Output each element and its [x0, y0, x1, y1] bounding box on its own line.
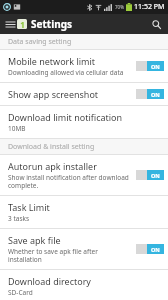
staticText: ON [151, 91, 160, 98]
staticText: 10MB [8, 124, 26, 133]
staticText: Whether to save apk file after installat… [8, 247, 132, 264]
staticText: Data saving setting [8, 37, 72, 47]
button[interactable]: Menu [4, 18, 16, 30]
staticText: ON [151, 63, 160, 70]
button[interactable]: Download limit notification [0, 106, 168, 139]
staticText: Download & install setting [8, 142, 95, 152]
staticText: Show install notification after download… [8, 173, 132, 190]
staticText: ON [151, 246, 160, 253]
staticText: Download limit notification [8, 111, 123, 123]
staticText: Show app screenshot [8, 88, 99, 100]
button[interactable]: Autorun apk installer [0, 155, 168, 196]
button[interactable]: Mobile network limit [0, 50, 168, 83]
button[interactable]: ON [136, 244, 164, 254]
staticText: 1 [20, 19, 25, 29]
staticText: ON [151, 172, 160, 179]
staticText: Downloading allowed via cellular data [8, 68, 124, 77]
button[interactable]: Search [148, 16, 164, 32]
staticText: 70% [115, 4, 124, 10]
staticText: Autorun apk installer [8, 160, 97, 172]
staticText: Settings [31, 17, 72, 31]
staticText: 11:52 PM [134, 2, 165, 12]
button[interactable]: ON [136, 61, 164, 71]
staticText: Task Limit [8, 201, 50, 213]
button[interactable]: Show app screenshot [0, 83, 168, 106]
staticText: SD-Card [8, 288, 33, 295]
button[interactable]: Task Limit [0, 196, 168, 229]
staticText: Mobile network limit [8, 55, 96, 67]
staticText: Save apk file [8, 234, 61, 246]
button[interactable]: ON [136, 170, 164, 180]
button[interactable]: Save apk file [0, 229, 168, 270]
staticText: 3 tasks [8, 214, 30, 223]
button[interactable]: Download directory [0, 270, 168, 300]
staticText: Download directory [8, 275, 91, 287]
button[interactable]: ON [136, 89, 164, 99]
